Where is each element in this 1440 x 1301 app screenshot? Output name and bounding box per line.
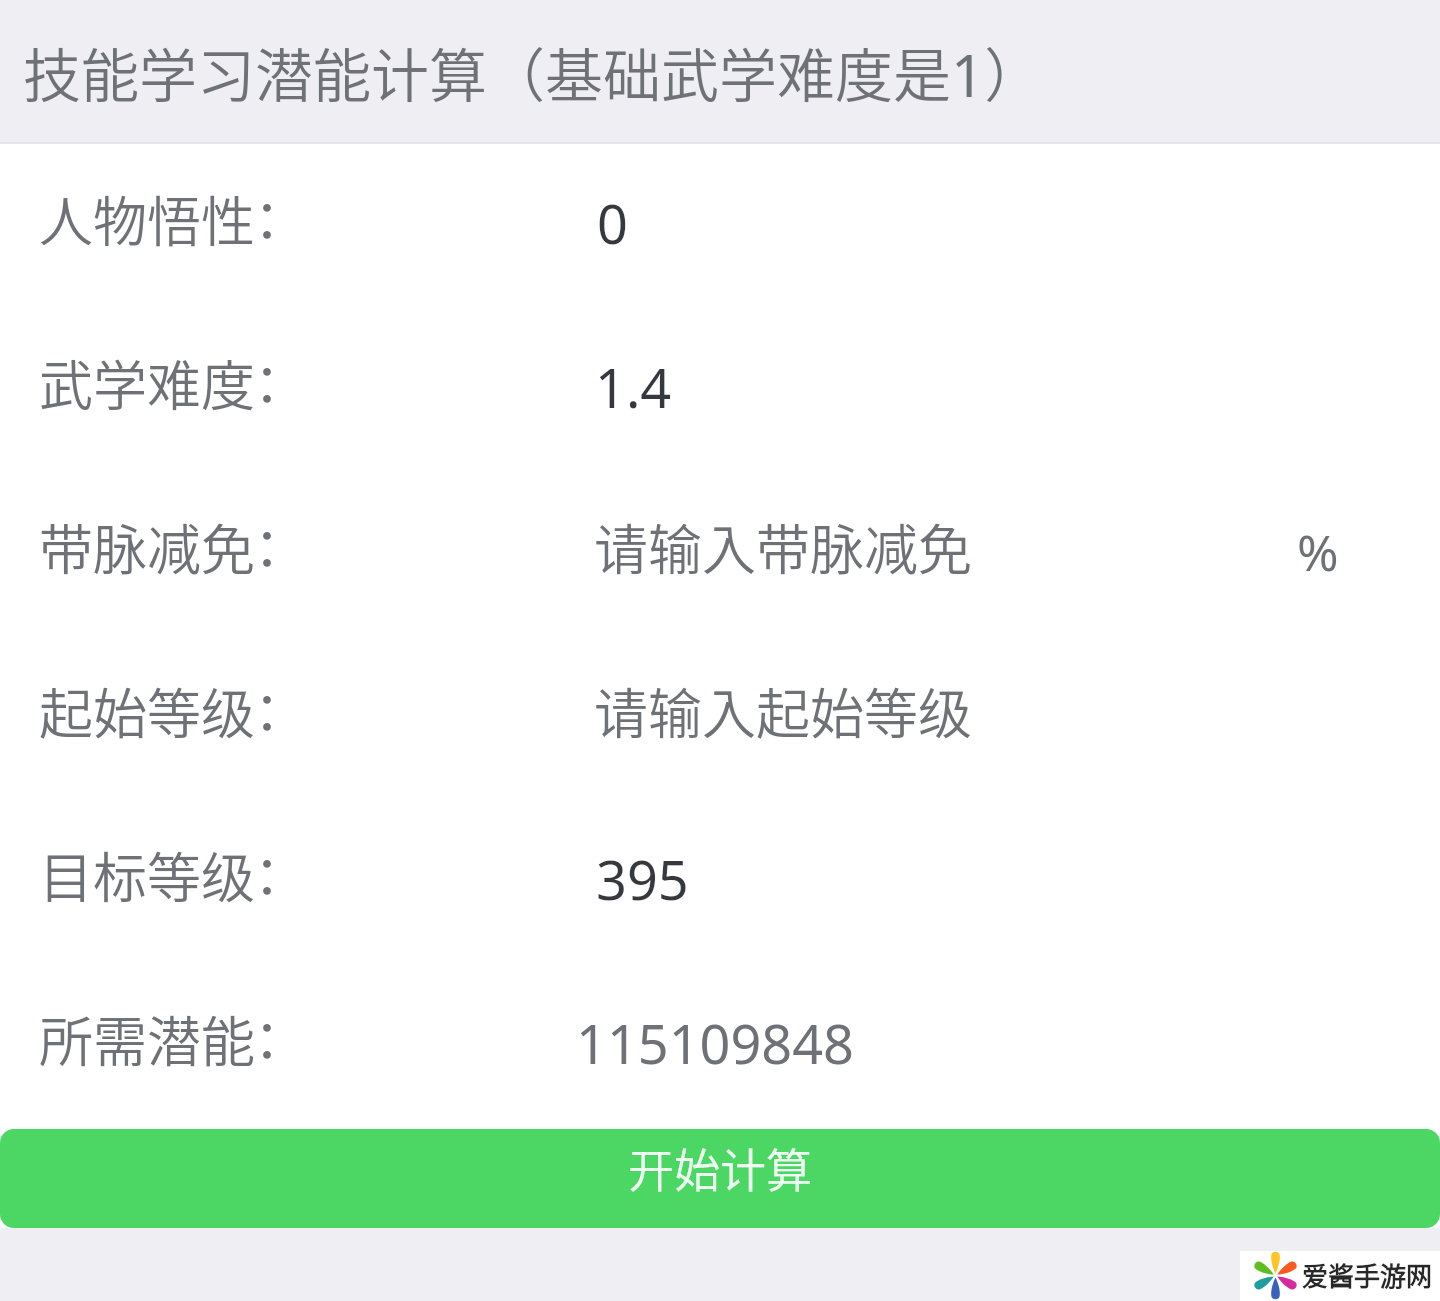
staticText: 0 (597, 186, 628, 260)
button[interactable]: 人物悟性 (0, 160, 1440, 276)
staticText: ： (240, 999, 294, 1077)
other: 爱酱手游网 (1240, 1251, 1440, 1301)
staticText: 人物悟性 (39, 179, 255, 257)
staticText: 请输入起始等级 (594, 671, 972, 749)
staticText: 起始等级 (39, 671, 255, 749)
staticText: ： (240, 507, 294, 585)
button[interactable]: 起始等级 (0, 652, 1440, 768)
staticText: 爱酱手游网 (1302, 1256, 1433, 1294)
staticText: % (1297, 518, 1339, 586)
staticText: ： (240, 835, 294, 913)
button[interactable]: 武学难度 (0, 324, 1440, 440)
staticText: 115109848 (576, 1006, 854, 1080)
staticText: 请输入带脉减免 (594, 507, 972, 585)
staticText: 395 (596, 842, 689, 916)
button[interactable]: 目标等级 (0, 816, 1440, 932)
staticText: 目标等级 (39, 835, 255, 913)
staticText: 技能学习潜能计算（基础武学难度是1） (23, 30, 1043, 114)
staticText: ： (240, 179, 294, 257)
staticText: 所需潜能 (39, 999, 255, 1077)
staticText: 1.4 (595, 350, 672, 424)
staticText: 开始计算 (628, 1134, 812, 1201)
button[interactable]: 开始计算 (0, 1129, 1440, 1228)
button[interactable]: 所需潜能 (0, 980, 1440, 1096)
staticText: ： (240, 671, 294, 749)
button[interactable]: 带脉减免 (0, 488, 1440, 604)
staticText: 带脉减免 (39, 507, 255, 585)
staticText: 武学难度 (39, 343, 255, 421)
staticText: ： (240, 343, 294, 421)
